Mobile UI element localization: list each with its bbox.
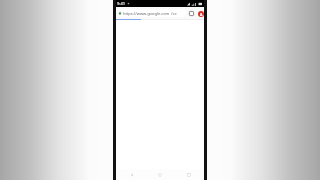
staticText: https://www.google.com [123,11,170,16]
button[interactable]: Recent apps [179,169,199,180]
staticText: A [200,12,203,17]
button[interactable]: Back [122,169,142,180]
button[interactable]: Account [197,10,204,17]
other: Secure connection [118,11,122,15]
staticText: 9:41 [117,1,125,6]
button[interactable]: Switch or close tabs [188,10,195,17]
button[interactable]: Secure connection [116,9,186,17]
staticText: /se [171,11,177,16]
button[interactable]: Home [150,169,170,180]
